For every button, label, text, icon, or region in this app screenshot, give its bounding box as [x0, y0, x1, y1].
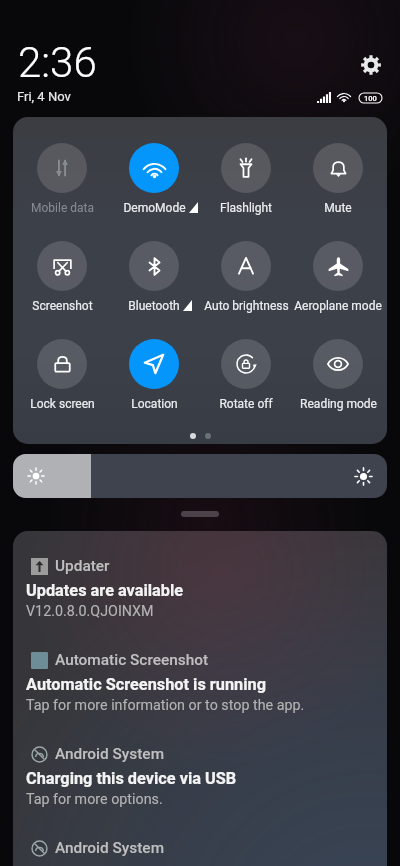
button[interactable]: Settings	[354, 48, 388, 82]
staticText: Lock screen	[30, 397, 95, 411]
button[interactable]: Flashlight	[200, 143, 292, 215]
button[interactable]: Android System	[13, 813, 387, 866]
staticText: Mobile data	[31, 201, 94, 215]
staticText: 100	[364, 94, 377, 103]
staticText: Automatic Screenshot	[55, 651, 209, 669]
staticText: Location	[131, 397, 178, 411]
button[interactable]: Auto brightness	[200, 241, 292, 313]
staticText: Aeroplane mode	[294, 299, 382, 313]
button[interactable]: Mobile data	[16, 143, 108, 215]
staticText: 2:36	[18, 38, 97, 87]
staticText: Updates are available	[26, 581, 184, 600]
staticText: Tap for more information or to stop the …	[26, 697, 305, 714]
staticText: Tap for more options.	[26, 791, 163, 808]
button[interactable]: Updater	[13, 531, 387, 625]
button[interactable]: Rotate off	[200, 339, 292, 411]
staticText: Reading mode	[300, 397, 377, 411]
button[interactable]: Bluetooth	[108, 241, 200, 313]
staticText: Rotate off	[219, 397, 273, 411]
staticText: V12.0.8.0.QJOINXM	[26, 603, 154, 620]
staticText: Auto brightness	[204, 299, 289, 313]
button[interactable]: Screenshot	[16, 241, 108, 313]
staticText: Screenshot	[32, 299, 93, 313]
button[interactable]: Aeroplane mode	[292, 241, 384, 313]
staticText: DemoMode	[123, 201, 186, 215]
staticText: Updater	[55, 557, 110, 575]
staticText: Android System	[55, 839, 165, 857]
staticText: Fri, 4 Nov	[17, 89, 71, 104]
staticText: Bluetooth	[128, 299, 180, 313]
staticText: Wireless debugging connected	[26, 863, 252, 866]
button[interactable]: Location	[108, 339, 200, 411]
button[interactable]: Reading mode	[292, 339, 384, 411]
staticText: Automatic Screenshot is running	[26, 675, 266, 694]
button[interactable]	[13, 454, 387, 498]
staticText: Android System	[55, 745, 165, 763]
button[interactable]: Mute	[292, 143, 384, 215]
staticText: Mute	[324, 201, 352, 215]
staticText: Charging this device via USB	[26, 769, 237, 788]
button[interactable]: Automatic Screenshot	[13, 625, 387, 719]
button[interactable]: Android System	[13, 719, 387, 813]
button[interactable]: DemoMode	[108, 143, 200, 215]
button[interactable]: Lock screen	[16, 339, 108, 411]
staticText: Flashlight	[220, 201, 272, 215]
